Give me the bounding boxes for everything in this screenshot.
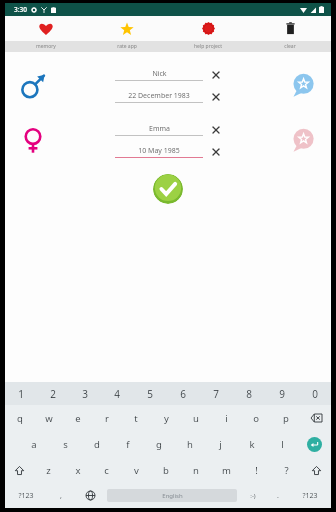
button[interactable]: rate app: [86, 16, 167, 41]
staticText: k: [249, 438, 255, 451]
button[interactable]: n: [181, 457, 211, 483]
button[interactable]: k: [236, 431, 267, 457]
staticText: e: [75, 412, 81, 425]
staticText: !: [255, 464, 258, 477]
button[interactable]: Clear field: [209, 68, 222, 81]
staticText: ,: [60, 491, 62, 501]
staticText: 6: [180, 387, 186, 401]
button[interactable]: 3: [69, 382, 101, 405]
button[interactable]: !: [241, 457, 271, 483]
button[interactable]: 1: [5, 382, 37, 405]
staticText: v: [134, 464, 139, 477]
staticText: 22 December 1983: [128, 91, 190, 101]
button[interactable]: v: [121, 457, 151, 483]
button[interactable]: i: [211, 405, 241, 431]
button[interactable]: j: [205, 431, 236, 457]
staticText: i: [225, 412, 228, 425]
button[interactable]: ?: [271, 457, 301, 483]
button[interactable]: ?123: [5, 483, 47, 508]
button[interactable]: English: [107, 489, 237, 502]
staticText: 5: [147, 387, 153, 401]
staticText: q: [17, 412, 23, 425]
staticText: c: [104, 464, 109, 477]
button[interactable]: r: [92, 405, 121, 431]
button[interactable]: ?123: [289, 483, 331, 508]
staticText: y: [164, 412, 169, 425]
button[interactable]: memory: [5, 16, 86, 41]
staticText: w: [45, 412, 53, 425]
button[interactable]: Clear field: [209, 90, 222, 103]
button[interactable]: a: [18, 431, 50, 457]
button[interactable]: Shift: [301, 457, 331, 483]
button[interactable]: 7: [199, 382, 232, 405]
button[interactable]: ,: [47, 483, 75, 508]
button[interactable]: z: [34, 457, 63, 483]
staticText: ?123: [18, 491, 34, 501]
button[interactable]: b: [151, 457, 181, 483]
staticText: 3:30: [14, 5, 27, 14]
staticText: Nick: [152, 69, 167, 79]
staticText: 10 May 1985: [138, 146, 180, 156]
staticText: 7: [213, 387, 219, 401]
staticText: g: [156, 438, 162, 451]
staticText: help project: [194, 43, 222, 50]
staticText: p: [283, 412, 289, 425]
button[interactable]: Enter: [298, 431, 331, 457]
button[interactable]: clear: [249, 16, 331, 41]
button[interactable]: q: [5, 405, 34, 431]
button[interactable]: 8: [232, 382, 265, 405]
staticText: rate app: [117, 43, 137, 50]
staticText: s: [63, 438, 68, 451]
button[interactable]: Calculate: [153, 174, 183, 204]
staticText: d: [94, 438, 100, 451]
button[interactable]: w: [34, 405, 63, 431]
staticText: m: [222, 464, 231, 477]
staticText: 3: [82, 387, 88, 401]
button[interactable]: Clear field: [209, 145, 222, 158]
button[interactable]: :-): [239, 483, 267, 508]
staticText: n: [193, 464, 199, 477]
staticText: 4: [114, 387, 120, 401]
button[interactable]: f: [112, 431, 143, 457]
button[interactable]: Female details: [289, 127, 317, 155]
button[interactable]: g: [143, 431, 174, 457]
button[interactable]: 5: [133, 382, 166, 405]
staticText: Emma: [149, 124, 170, 134]
staticText: :-): [250, 492, 256, 500]
staticText: b: [163, 464, 169, 477]
button[interactable]: Change language: [75, 483, 105, 508]
button[interactable]: Backspace: [301, 405, 331, 431]
button[interactable]: 4: [101, 382, 133, 405]
button[interactable]: help project: [167, 16, 249, 41]
staticText: 1: [18, 387, 24, 401]
button[interactable]: u: [181, 405, 211, 431]
staticText: 9: [279, 387, 285, 401]
button[interactable]: e: [63, 405, 92, 431]
button[interactable]: t: [121, 405, 151, 431]
button[interactable]: Clear field: [209, 123, 222, 136]
staticText: memory: [36, 43, 56, 50]
staticText: 0: [312, 387, 318, 401]
button[interactable]: 0: [298, 382, 331, 405]
button[interactable]: m: [211, 457, 241, 483]
button[interactable]: 6: [166, 382, 199, 405]
button[interactable]: o: [241, 405, 271, 431]
button[interactable]: x: [63, 457, 92, 483]
button[interactable]: 2: [37, 382, 69, 405]
button[interactable]: s: [50, 431, 81, 457]
button[interactable]: Shift: [5, 457, 34, 483]
button[interactable]: c: [92, 457, 121, 483]
staticText: x: [75, 464, 81, 477]
button[interactable]: 9: [265, 382, 298, 405]
button[interactable]: Male details: [289, 72, 317, 100]
button[interactable]: l: [267, 431, 298, 457]
button[interactable]: y: [151, 405, 181, 431]
button[interactable]: p: [271, 405, 301, 431]
staticText: j: [219, 438, 222, 451]
staticText: t: [134, 412, 138, 425]
button[interactable]: h: [174, 431, 205, 457]
button[interactable]: d: [81, 431, 112, 457]
staticText: clear: [284, 43, 296, 50]
staticText: f: [126, 438, 130, 451]
